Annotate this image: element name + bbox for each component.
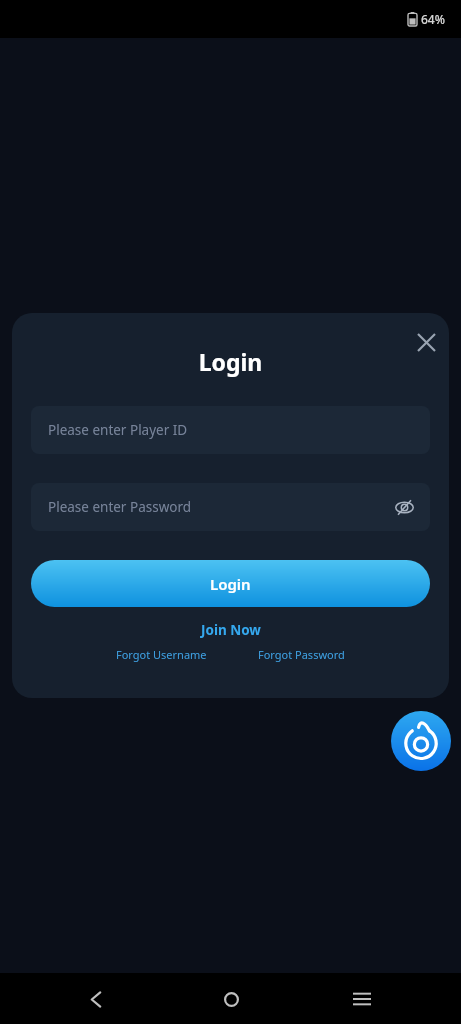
button[interactable]: Login — [31, 560, 430, 607]
button[interactable]: Open support — [391, 711, 451, 771]
staticText: Join Now — [201, 621, 261, 639]
staticText: Forgot Password — [258, 647, 345, 662]
staticText: Forgot Username — [116, 647, 207, 662]
button[interactable]: Please enter Password — [31, 483, 430, 531]
button[interactable]: Forgot Password — [254, 645, 349, 664]
button[interactable]: Recent apps — [338, 975, 386, 1023]
button[interactable]: Back — [72, 975, 120, 1023]
staticText: Login — [12, 346, 449, 377]
button[interactable]: Please enter Player ID — [31, 406, 430, 454]
button[interactable]: Show password — [386, 489, 422, 525]
staticText: Please enter Password — [48, 498, 192, 516]
button[interactable]: Home — [207, 975, 255, 1023]
staticText: 64% — [421, 11, 445, 27]
button[interactable]: Forgot Username — [112, 645, 211, 664]
button[interactable]: Close — [405, 321, 447, 363]
staticText: Login — [210, 574, 251, 594]
staticText: Please enter Player ID — [48, 421, 188, 439]
button[interactable]: Join Now — [193, 619, 269, 641]
